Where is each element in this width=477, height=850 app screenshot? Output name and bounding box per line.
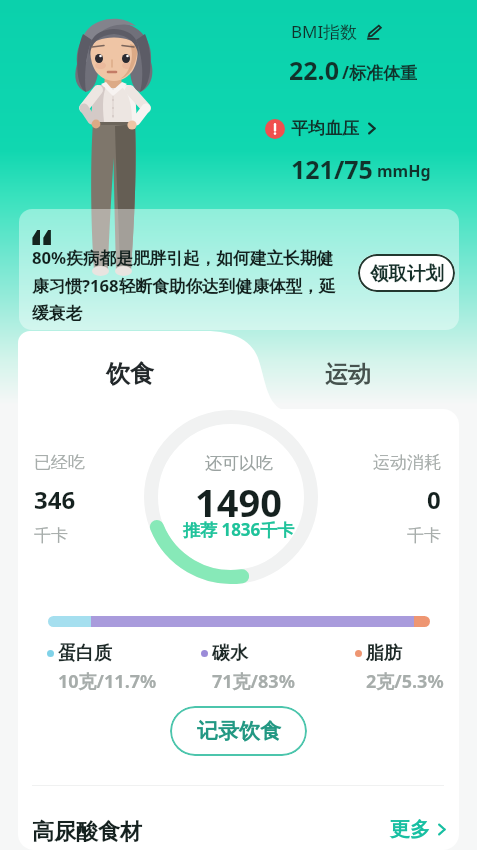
staticText: 碳水: [212, 642, 248, 665]
button[interactable]: 更多: [390, 817, 448, 842]
staticText: 2克/5.3%: [366, 669, 444, 694]
button[interactable]: 记录饮食: [170, 706, 307, 756]
staticText: 71克/83%: [212, 669, 295, 694]
staticText: 领取计划: [370, 262, 444, 285]
button[interactable]: 平均血压: [265, 118, 378, 139]
staticText: 运动消耗: [373, 452, 441, 473]
staticText: 记录饮食: [197, 718, 281, 744]
staticText: 推荐 1836千卡: [183, 518, 295, 541]
staticText: 蛋白质: [58, 642, 112, 665]
staticText: 0: [427, 483, 441, 516]
staticText: mmHg: [377, 160, 431, 182]
staticText: 运动: [325, 360, 371, 389]
staticText: 已经吃: [34, 452, 85, 473]
button[interactable]: 饮食: [18, 331, 240, 411]
button[interactable]: 80%疾病都是肥胖引起，如何建立长期健 康习惯?168轻断食助你达到健康体型，延…: [19, 209, 459, 330]
staticText: 更多: [390, 817, 430, 842]
staticText: 22.0: [289, 53, 339, 87]
staticText: 平均血压: [291, 118, 359, 139]
staticText: 121/75: [291, 152, 373, 186]
staticText: 1490: [195, 476, 282, 528]
button[interactable]: 运动: [263, 331, 459, 407]
staticText: 脂肪: [366, 642, 402, 665]
staticText: 346: [34, 483, 76, 516]
button[interactable]: 领取计划: [358, 254, 455, 292]
staticText: BMI指数: [291, 20, 358, 43]
button[interactable]: BMI指数: [291, 20, 382, 43]
staticText: 饮食: [106, 359, 154, 389]
staticText: /标准体重: [342, 61, 418, 84]
staticText: 80%疾病都是肥胖引起，如何建立长期健 康习惯?168轻断食助你达到健康体型，延…: [32, 246, 336, 324]
staticText: 10克/11.7%: [58, 669, 157, 694]
staticText: 千卡: [34, 525, 68, 546]
staticText: 千卡: [407, 525, 441, 546]
staticText: 高尿酸食材: [32, 818, 142, 846]
other: Edit BMI: [366, 24, 382, 40]
staticText: 还可以吃: [205, 453, 273, 474]
